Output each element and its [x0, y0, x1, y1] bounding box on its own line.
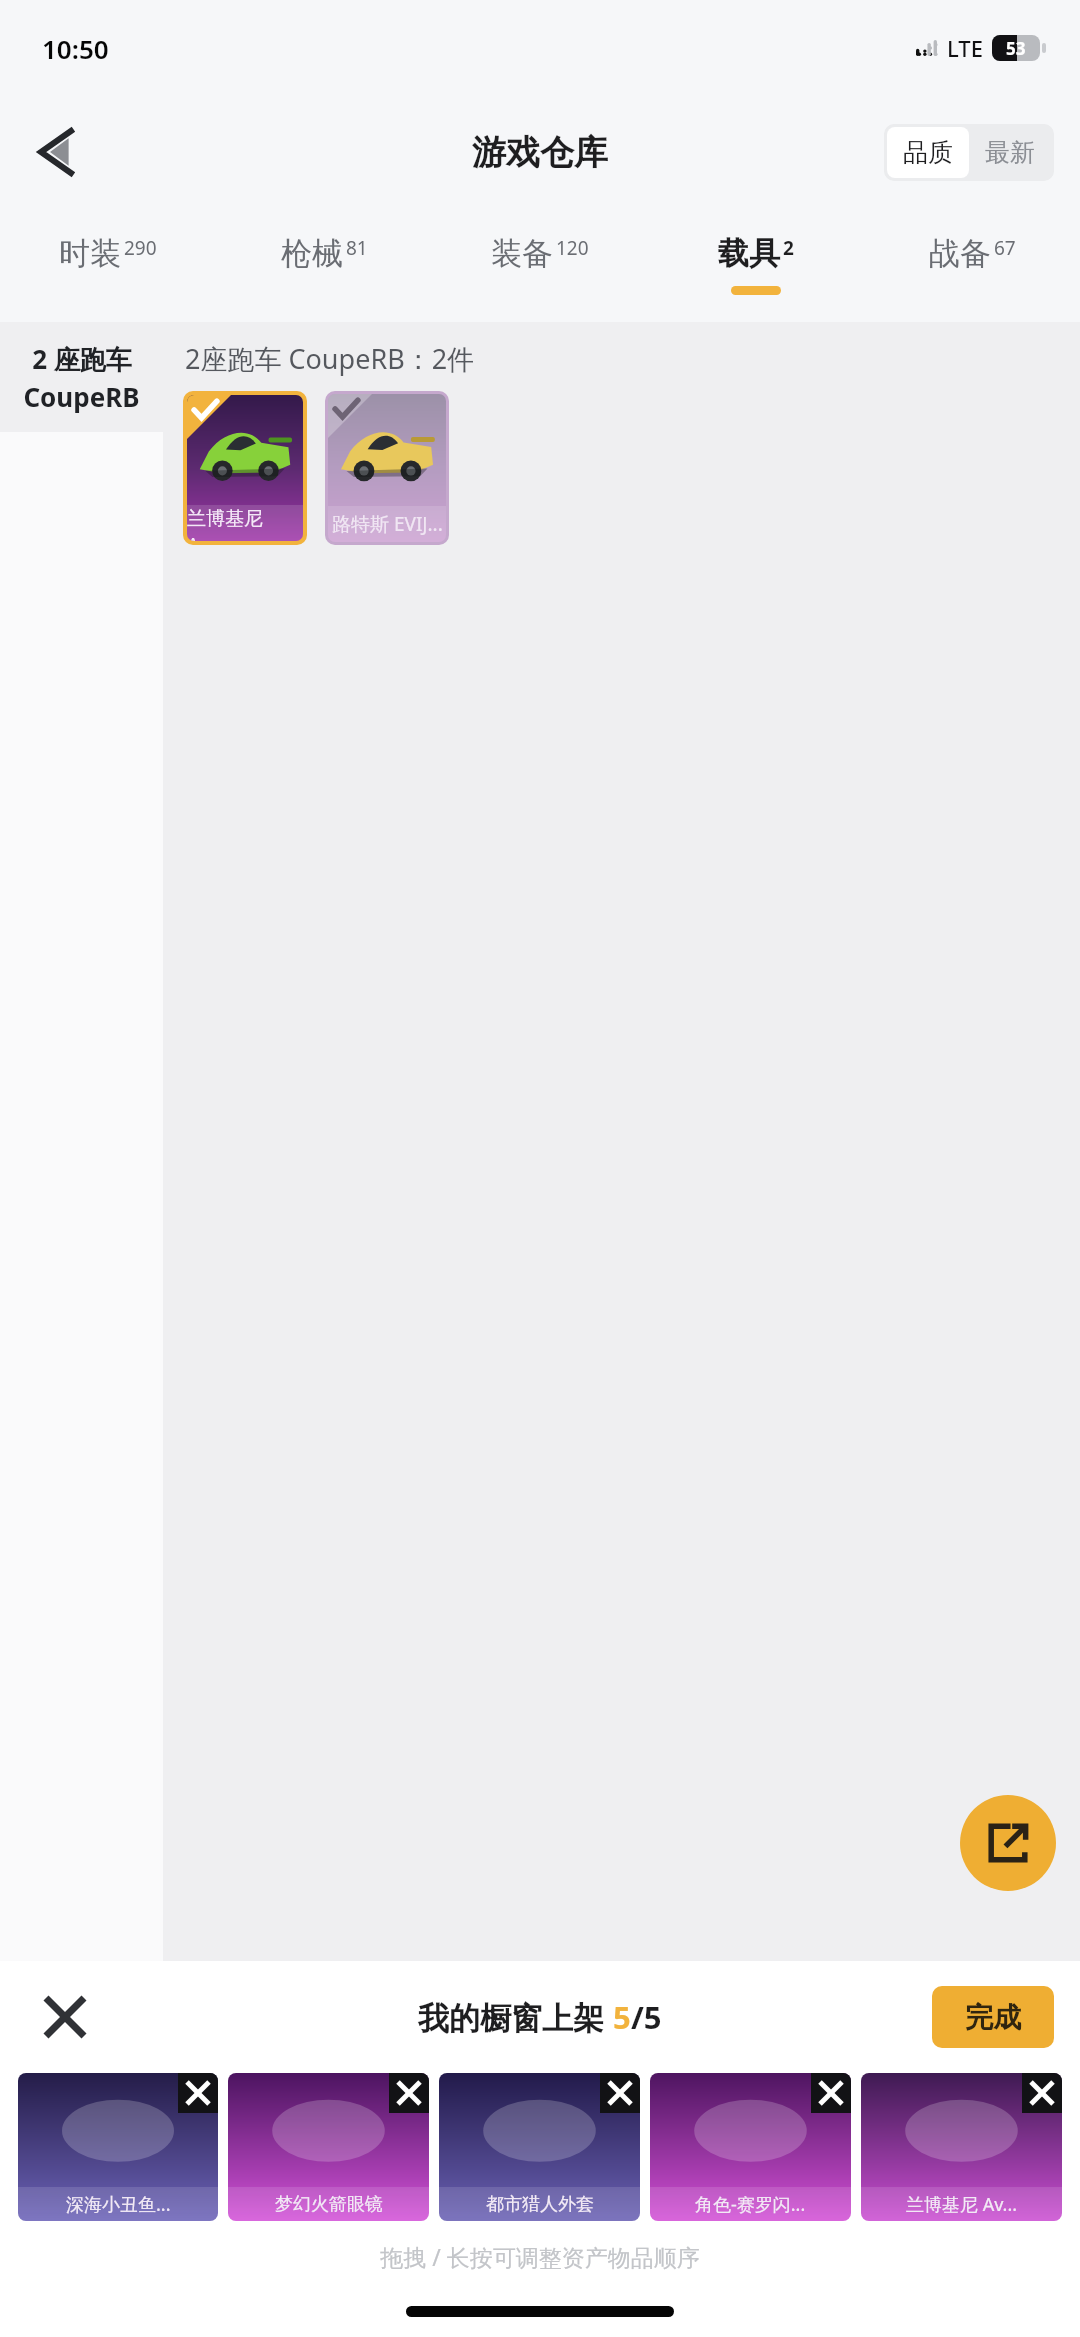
staticText: 角色-赛罗闪...: [695, 2192, 806, 2217]
staticText: 兰博基尼 Av...: [906, 2192, 1018, 2217]
button[interactable]: 兰博基尼 Av...: [861, 2073, 1062, 2221]
staticText: 拖拽 / 长按可调整资产物品顺序: [0, 2241, 1080, 2272]
staticText: 都市猎人外套: [486, 2193, 594, 2216]
staticText: 枪械: [281, 234, 343, 273]
button[interactable]: 路特斯 EVIJ...: [325, 391, 449, 545]
staticText: /5: [631, 1996, 662, 2038]
button[interactable]: Remove 梦幻火箭眼镜: [389, 2073, 429, 2113]
staticText: 深海小丑鱼...: [66, 2192, 171, 2217]
staticText: 载具: [718, 234, 780, 273]
staticText: 290: [124, 235, 157, 261]
staticText: 67: [994, 235, 1016, 261]
button[interactable]: 2 座跑车: [0, 322, 163, 432]
staticText: 5: [613, 1996, 631, 2038]
staticText: 120: [556, 235, 589, 261]
button[interactable]: 品质: [887, 127, 969, 178]
staticText: 游戏仓库: [472, 131, 608, 174]
button[interactable]: 时装: [0, 208, 216, 322]
staticText: 2座跑车 CoupeRB：2件: [185, 340, 475, 377]
button[interactable]: 装备: [432, 208, 648, 322]
staticText: 战备: [929, 234, 991, 273]
button[interactable]: 完成: [932, 1986, 1054, 2048]
staticText: 品质: [903, 137, 953, 168]
button[interactable]: 深海小丑鱼...: [18, 2073, 218, 2221]
staticText: LTE: [947, 33, 983, 63]
staticText: 时装: [59, 234, 121, 273]
staticText: CoupeRB: [23, 379, 140, 414]
staticText: 53: [1006, 37, 1026, 60]
button[interactable]: Back: [18, 114, 94, 190]
button[interactable]: 最新: [969, 127, 1051, 178]
staticText: 装备: [491, 234, 553, 273]
button[interactable]: 都市猎人外套: [439, 2073, 640, 2221]
staticText: 兰博基尼 Av...: [187, 505, 303, 541]
button[interactable]: 兰博基尼 Av...: [183, 391, 307, 545]
staticText: 10:50: [42, 31, 109, 66]
staticText: 2 座跑车: [32, 341, 132, 377]
button[interactable]: Remove 都市猎人外套: [600, 2073, 640, 2113]
staticText: 最新: [985, 137, 1035, 168]
staticText: 梦幻火箭眼镜: [275, 2193, 383, 2216]
button[interactable]: 载具: [648, 208, 864, 322]
button[interactable]: Remove 深海小丑鱼...: [178, 2073, 218, 2113]
button[interactable]: 梦幻火箭眼镜: [228, 2073, 429, 2221]
button[interactable]: Close: [30, 1982, 100, 2052]
button[interactable]: 战备: [864, 208, 1080, 322]
button[interactable]: 枪械: [216, 208, 432, 322]
staticText: 我的橱窗上架: [418, 1996, 613, 2038]
staticText: 路特斯 EVIJ...: [332, 511, 443, 537]
button[interactable]: Remove 角色-赛罗闪...: [811, 2073, 851, 2113]
button[interactable]: 角色-赛罗闪...: [650, 2073, 851, 2221]
button[interactable]: Remove 兰博基尼 Av...: [1022, 2073, 1062, 2113]
staticText: 81: [346, 235, 368, 261]
staticText: 2: [783, 235, 794, 261]
button[interactable]: Share: [960, 1795, 1056, 1891]
staticText: 完成: [965, 2000, 1021, 2035]
